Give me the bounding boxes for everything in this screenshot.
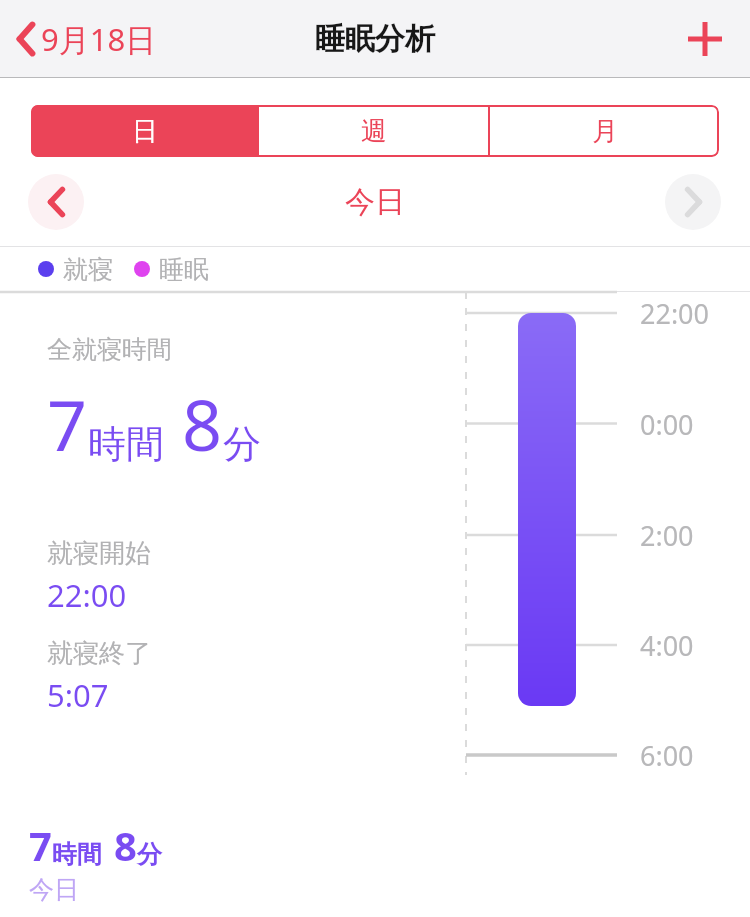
staticText: 22:00 [47, 574, 127, 616]
staticText: 日 [132, 115, 158, 148]
staticText: 時間 [88, 420, 164, 468]
staticText: 7 [29, 818, 52, 872]
button[interactable]: Add data [678, 12, 732, 66]
staticText: 9月18日 [41, 18, 157, 60]
staticText: 8 [114, 818, 137, 872]
staticText: 睡眠分析 [315, 20, 435, 58]
staticText: 5:07 [47, 674, 109, 716]
staticText: 時間 [52, 839, 102, 870]
staticText: 分 [137, 839, 162, 870]
staticText: 就寝終了 [47, 637, 151, 670]
button[interactable]: Previous day [28, 174, 84, 230]
button[interactable]: 週 [259, 105, 488, 157]
staticText: 月 [592, 115, 618, 148]
staticText: 7 [47, 376, 88, 471]
staticText: 全就寝時間 [47, 334, 172, 365]
staticText: 22:00 [640, 295, 710, 332]
staticText: 今日 [345, 183, 405, 221]
staticText: 睡眠 [159, 254, 209, 285]
button[interactable]: 日 [31, 105, 259, 157]
button[interactable]: 9月18日 [12, 12, 161, 66]
staticText: 今日 [29, 874, 79, 905]
staticText: 就寝開始 [47, 537, 151, 570]
staticText: 6:00 [640, 737, 694, 774]
staticText: 8 [182, 376, 223, 471]
button[interactable]: 月 [490, 105, 719, 157]
button[interactable]: Next day [665, 174, 721, 230]
staticText: 0:00 [640, 406, 694, 443]
staticText: 2:00 [640, 517, 694, 554]
staticText: 分 [223, 420, 261, 468]
staticText: 就寝 [63, 254, 113, 285]
staticText: 4:00 [640, 627, 694, 664]
staticText: 週 [361, 115, 387, 148]
